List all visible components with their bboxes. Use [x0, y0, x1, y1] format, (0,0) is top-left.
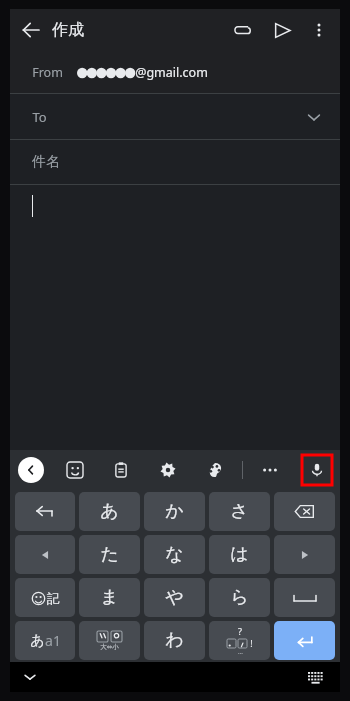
staticText: ? — [238, 625, 242, 637]
staticText: ら — [230, 586, 249, 609]
button[interactable]: More options — [302, 13, 336, 47]
button[interactable]: Cursor left — [15, 535, 75, 574]
button[interactable]: Emoji and symbols — [15, 578, 75, 617]
button[interactable]: Delete — [274, 492, 335, 531]
staticText: た — [100, 543, 119, 566]
button[interactable]: More — [255, 455, 285, 485]
button[interactable]: Change input mode — [15, 621, 75, 660]
staticText: あ — [30, 632, 45, 650]
staticText: や — [165, 586, 184, 609]
button[interactable]: To — [10, 94, 340, 139]
staticText: か — [165, 500, 184, 523]
button[interactable]: Send — [262, 10, 302, 50]
button[interactable]: Voice input — [302, 455, 332, 485]
button[interactable]: な — [144, 535, 205, 574]
button[interactable]: From — [10, 51, 340, 93]
button[interactable]: Cursor right — [274, 535, 335, 574]
button[interactable]: や — [144, 578, 205, 617]
staticText: To — [32, 108, 47, 126]
button[interactable]: Space — [274, 578, 335, 617]
staticText: は — [230, 543, 249, 566]
button[interactable]: Undo — [15, 492, 75, 531]
button[interactable]: わ — [144, 621, 205, 660]
staticText: な — [165, 543, 184, 566]
staticText: @gmail.com — [135, 64, 208, 81]
button[interactable]: Theme — [200, 455, 230, 485]
button[interactable]: Switch keyboard — [296, 662, 336, 692]
button[interactable]: Enter — [274, 621, 335, 660]
staticText: ! — [250, 637, 253, 649]
button[interactable]: ま — [79, 578, 140, 617]
button[interactable]: Attach file — [222, 10, 262, 50]
staticText: From — [32, 64, 63, 81]
button[interactable]: Dakuten and small kana — [79, 621, 140, 660]
button[interactable]: た — [79, 535, 140, 574]
button[interactable]: Stickers — [60, 455, 90, 485]
staticText: 大⇔小 — [100, 643, 119, 651]
staticText: ま — [100, 586, 119, 609]
staticText: あ — [100, 500, 119, 523]
staticText: 記 — [47, 590, 60, 606]
button[interactable]: か — [144, 492, 205, 531]
staticText: a1 — [45, 631, 61, 650]
button[interactable]: Back — [10, 9, 52, 51]
button[interactable]: Collapse toolbar — [18, 457, 44, 483]
staticText: さ — [230, 500, 249, 523]
button[interactable]: Punctuation — [209, 621, 270, 660]
staticText: わ — [165, 629, 184, 652]
button[interactable]: 件名 — [10, 140, 340, 184]
button[interactable]: Settings — [153, 455, 183, 485]
staticText: 作成 — [52, 20, 84, 40]
button[interactable]: Hide keyboard — [10, 662, 50, 692]
button[interactable]: ら — [209, 578, 270, 617]
button[interactable]: さ — [209, 492, 270, 531]
button[interactable]: あ — [79, 492, 140, 531]
button[interactable]: は — [209, 535, 270, 574]
staticText: ··· — [238, 649, 243, 657]
staticText: 件名 — [32, 153, 60, 171]
button[interactable]: Clipboard — [106, 455, 136, 485]
button[interactable] — [10, 185, 340, 450]
